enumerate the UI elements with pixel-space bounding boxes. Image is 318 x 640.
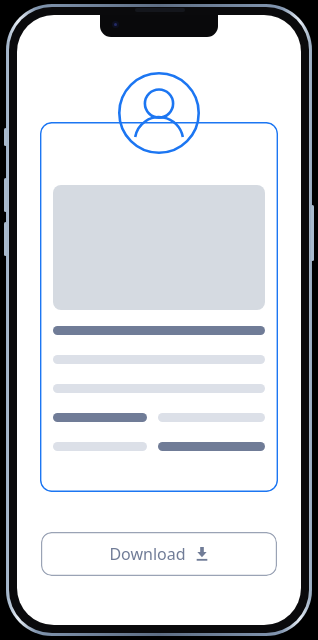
- staticText: Download: [109, 543, 186, 565]
- button[interactable]: [40, 122, 278, 492]
- button[interactable]: Download: [41, 532, 277, 576]
- button[interactable]: Profile avatar: [118, 72, 200, 154]
